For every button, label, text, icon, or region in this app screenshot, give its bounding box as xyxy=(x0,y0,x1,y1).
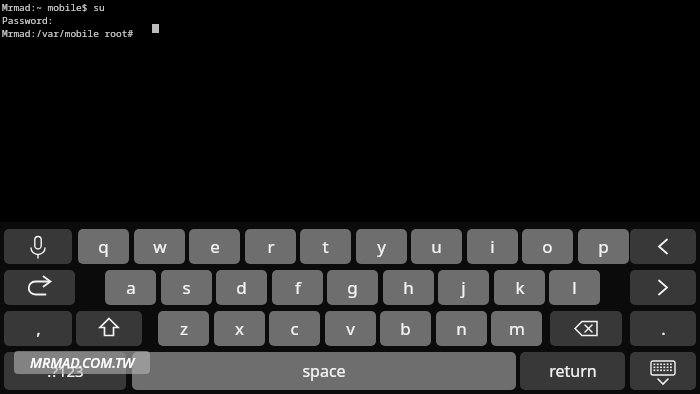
button[interactable]: Left xyxy=(630,229,696,264)
button[interactable]: x xyxy=(214,311,265,346)
staticText: c xyxy=(290,317,299,340)
staticText: Mrmad:~ mobile$ su xyxy=(2,1,105,14)
button[interactable]: b xyxy=(380,311,431,346)
staticText: q xyxy=(98,235,109,258)
staticText: r xyxy=(267,235,275,258)
staticText: f xyxy=(295,276,301,299)
button[interactable]: w xyxy=(134,229,185,264)
staticText: v xyxy=(346,317,355,340)
button[interactable]: p xyxy=(578,229,629,264)
staticText: , xyxy=(36,317,41,340)
button[interactable]: l xyxy=(549,270,600,305)
button[interactable]: g xyxy=(327,270,378,305)
button[interactable]: z xyxy=(158,311,209,346)
staticText: w xyxy=(153,235,167,258)
staticText: g xyxy=(347,276,358,299)
button[interactable]: Shift xyxy=(76,311,142,346)
staticText: b xyxy=(400,317,411,340)
staticText: i xyxy=(490,235,495,258)
button[interactable]: d xyxy=(216,270,267,305)
button[interactable]: a xyxy=(105,270,156,305)
staticText: d xyxy=(236,276,247,299)
staticText: m xyxy=(509,317,525,340)
staticText: s xyxy=(182,276,191,299)
button[interactable]: h xyxy=(383,270,434,305)
button[interactable]: space xyxy=(132,352,516,390)
button[interactable]: q xyxy=(78,229,129,264)
button[interactable]: .?123 xyxy=(4,352,126,390)
staticText: p xyxy=(598,235,609,258)
button[interactable]: k xyxy=(494,270,545,305)
button[interactable]: c xyxy=(269,311,320,346)
button[interactable]: Hide keyboard xyxy=(630,352,696,390)
staticText: n xyxy=(456,317,467,340)
staticText: . xyxy=(661,317,666,340)
button[interactable]: , xyxy=(4,311,72,346)
staticText: return xyxy=(549,360,597,382)
staticText: k xyxy=(515,276,525,299)
button[interactable]: j xyxy=(438,270,489,305)
button[interactable]: Dictation xyxy=(4,229,72,264)
staticText: space xyxy=(302,360,346,382)
button[interactable]: u xyxy=(411,229,462,264)
staticText: Password: xyxy=(2,14,54,27)
button[interactable]: m xyxy=(491,311,542,346)
button[interactable]: Backspace xyxy=(550,311,622,346)
staticText: o xyxy=(542,235,553,258)
button[interactable]: y xyxy=(356,229,407,264)
staticText: e xyxy=(210,235,220,258)
staticText: y xyxy=(377,235,386,258)
staticText: h xyxy=(403,276,414,299)
staticText: MRMAD.COM.TW xyxy=(30,353,135,372)
button[interactable]: return xyxy=(520,352,625,390)
button[interactable]: i xyxy=(467,229,518,264)
button[interactable]: f xyxy=(272,270,323,305)
button[interactable]: r xyxy=(245,229,296,264)
button[interactable]: t xyxy=(300,229,351,264)
staticText: t xyxy=(322,235,329,258)
button[interactable]: . xyxy=(630,311,696,346)
button[interactable]: s xyxy=(161,270,212,305)
button[interactable]: v xyxy=(325,311,376,346)
button[interactable]: o xyxy=(522,229,573,264)
button[interactable]: n xyxy=(436,311,487,346)
staticText: l xyxy=(572,276,577,299)
staticText: j xyxy=(461,276,466,299)
staticText: .?123 xyxy=(47,361,84,381)
staticText: Mrmad:/var/mobile root# xyxy=(2,27,139,40)
staticText: a xyxy=(126,276,136,299)
staticText: z xyxy=(180,317,188,340)
button[interactable]: e xyxy=(189,229,240,264)
staticText: x xyxy=(235,317,244,340)
staticText: u xyxy=(431,235,442,258)
button[interactable]: Right xyxy=(630,270,696,305)
button[interactable]: Tab xyxy=(4,270,75,305)
